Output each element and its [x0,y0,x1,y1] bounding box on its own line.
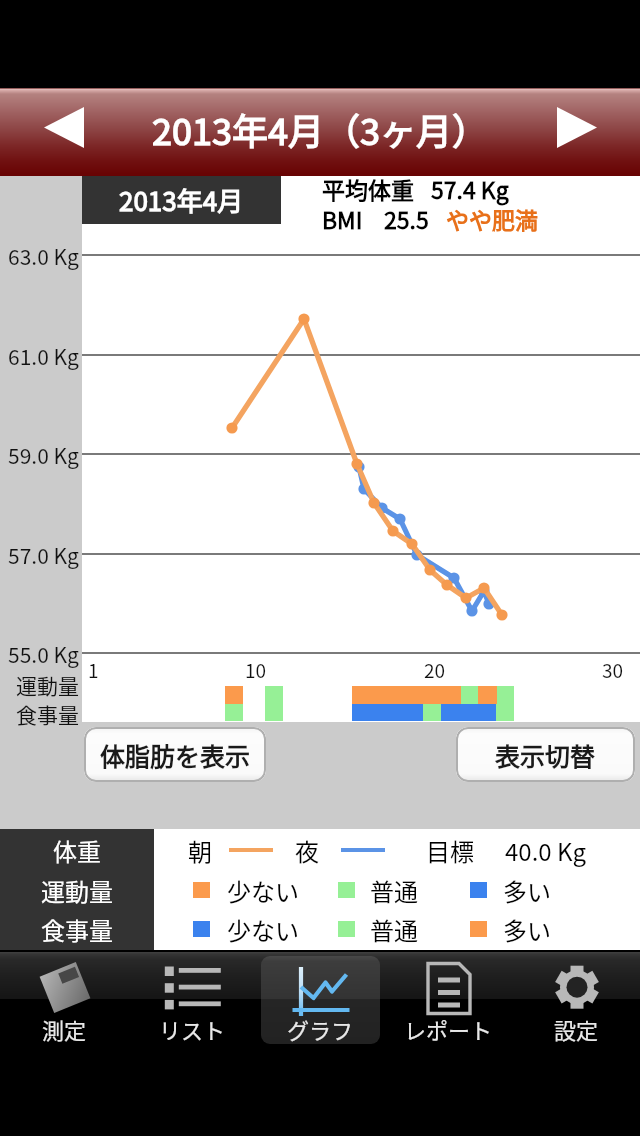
staticText: 30 [602,656,624,682]
staticText: 25.5 [384,202,429,235]
staticText: 少ない [227,912,299,947]
staticText: 63.0 Kg [8,241,79,271]
staticText: 体重 [53,833,101,868]
staticText: 運動量 [41,873,113,908]
staticText: 少ない [227,873,299,908]
button[interactable]: 測定 [5,956,124,1044]
button[interactable]: グラフ [261,956,380,1044]
staticText: 40.0 Kg [505,833,587,868]
staticText: 運動量 [16,670,79,700]
staticText: グラフ [287,1013,354,1044]
staticText: 目標 [426,833,474,868]
staticText: 食事量 [16,699,79,729]
staticText: 設定 [554,1013,599,1044]
staticText: 普通 [370,912,418,947]
staticText: 表示切替 [495,737,596,773]
staticText: 2013年4月 [119,181,244,219]
staticText: 57.0 Kg [8,540,79,570]
staticText: 20 [424,656,446,682]
staticText: 57.4 Kg [431,172,509,205]
button[interactable]: 設定 [517,956,636,1044]
button[interactable]: 表示切替 [456,727,635,782]
button[interactable]: Next period [545,90,608,164]
staticText: 59.0 Kg [8,440,79,470]
staticText: レポート [404,1013,493,1044]
staticText: 55.0 Kg [8,639,79,669]
staticText: 平均体重 [322,172,414,205]
staticText: 測定 [42,1013,87,1044]
staticText: 夜 [295,833,319,868]
staticText: BMI [322,202,363,235]
staticText: 多い [503,873,551,908]
staticText: 2013年4月（3ヶ月） [152,103,488,155]
button[interactable]: レポート [389,956,508,1044]
staticText: やや肥満 [446,202,538,235]
staticText: 普通 [370,873,418,908]
staticText: 61.0 Kg [8,341,79,371]
staticText: 1 [88,656,99,682]
staticText: 朝 [188,833,212,868]
staticText: 10 [245,656,267,682]
button[interactable]: Previous period [32,90,95,164]
staticText: 体脂肪を表示 [100,737,251,773]
staticText: 多い [503,912,551,947]
button[interactable]: 体脂肪を表示 [84,727,266,782]
staticText: リスト [159,1013,226,1044]
button[interactable]: 2013年4月 [82,176,281,224]
button[interactable]: リスト [133,956,252,1044]
staticText: 食事量 [41,912,113,947]
